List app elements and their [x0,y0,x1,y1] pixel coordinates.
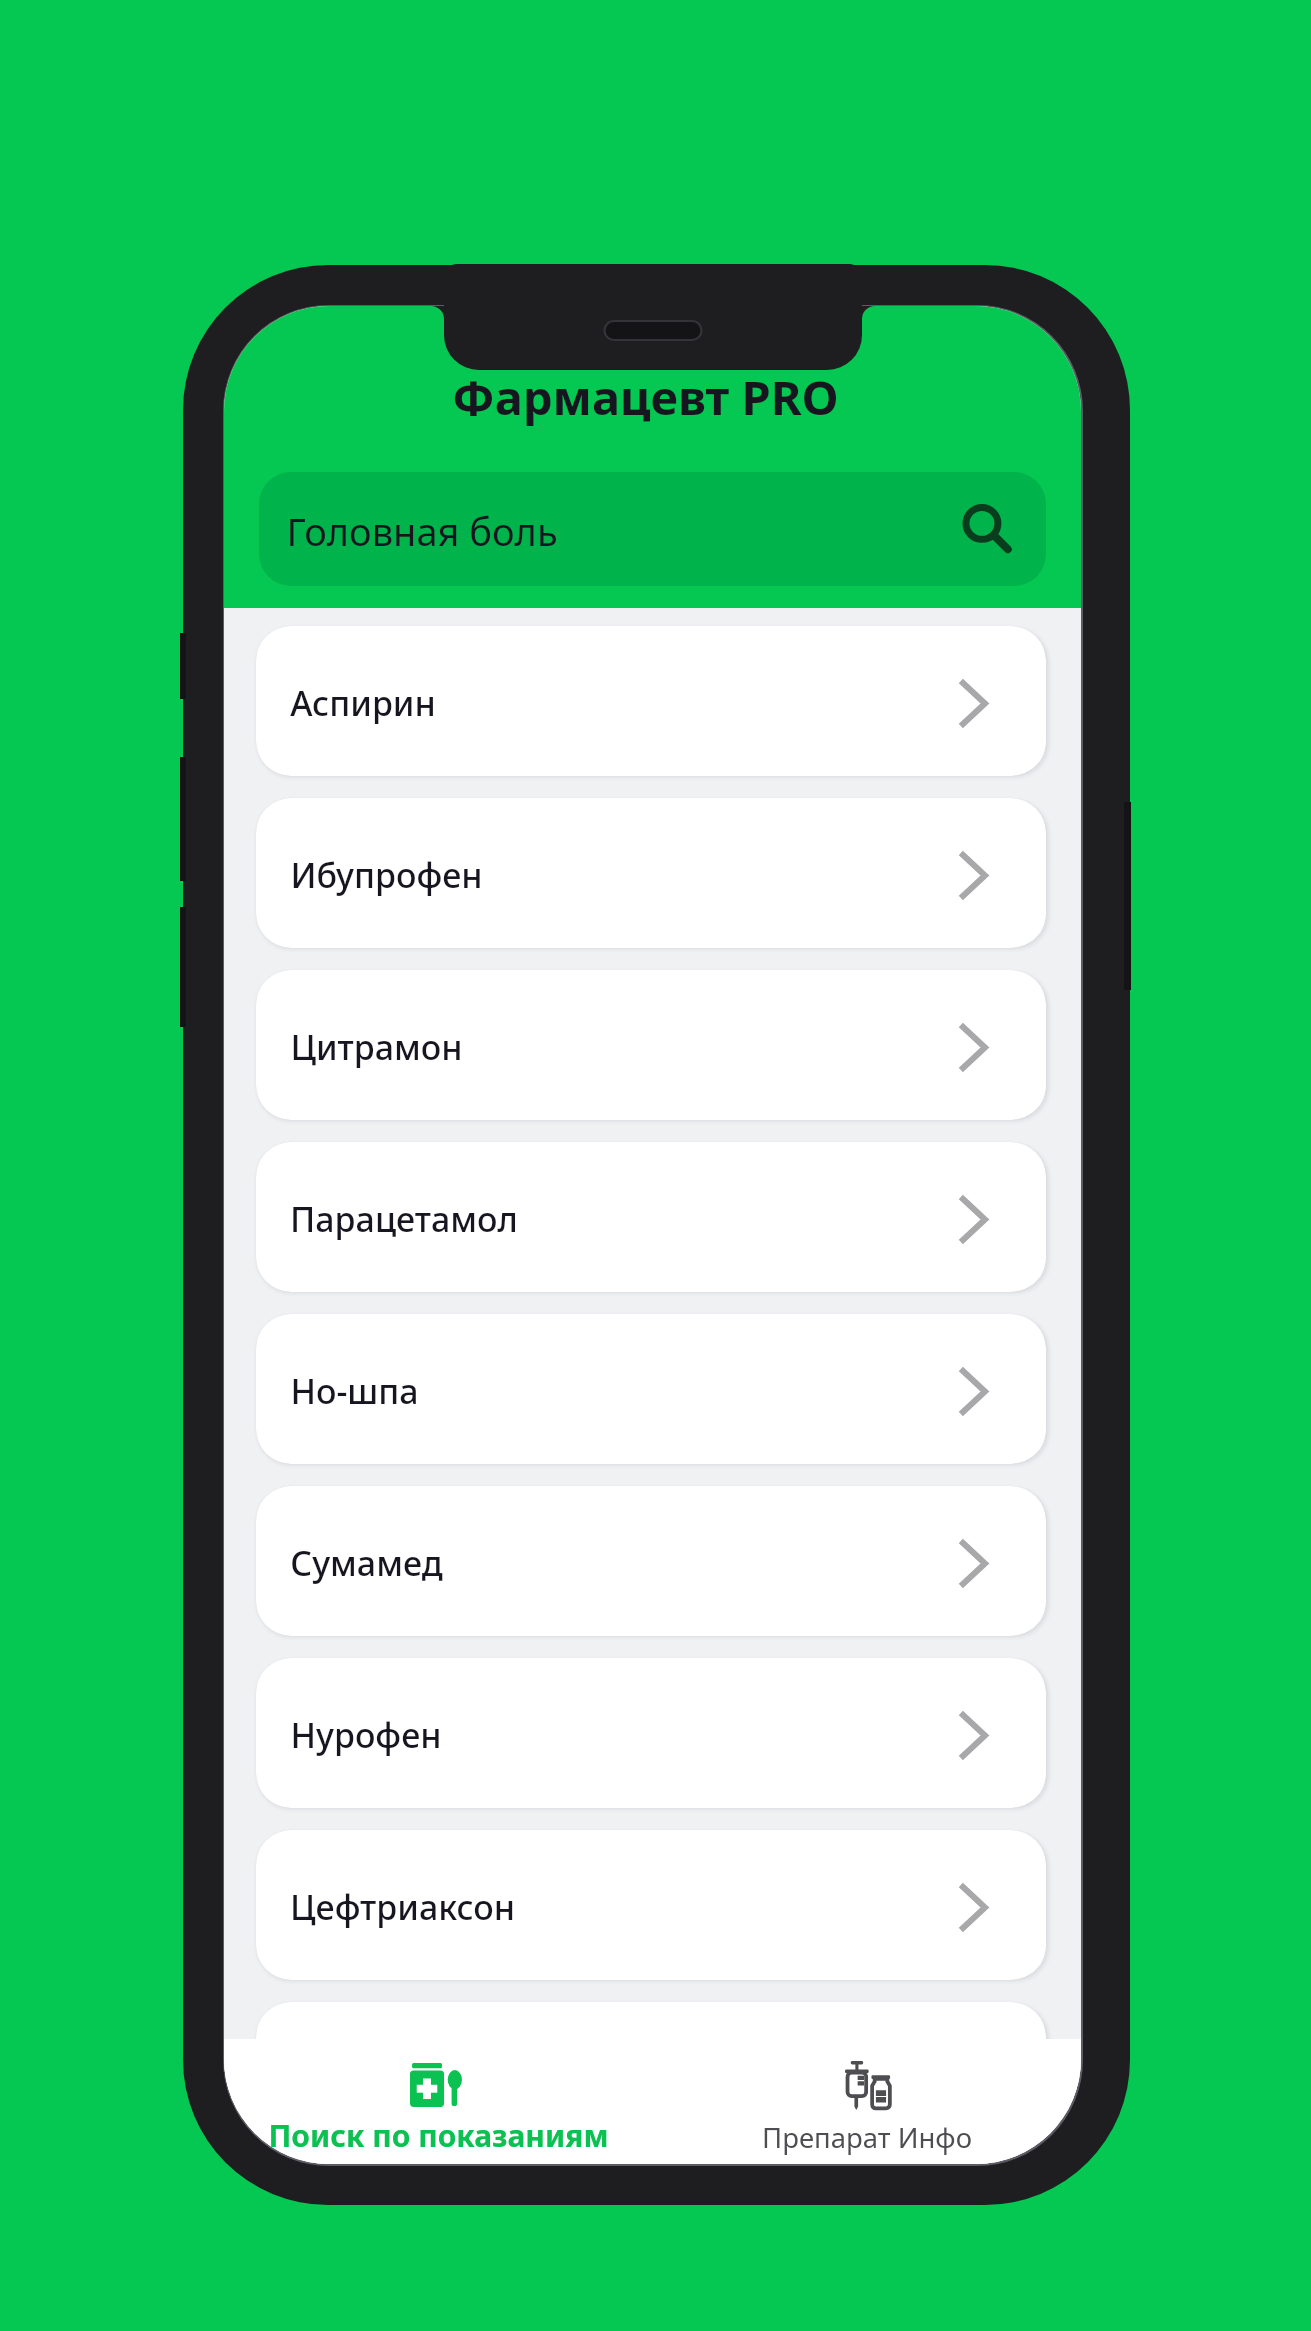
staticText: Сумамед [290,1540,443,1586]
button[interactable]: Аспирин [256,626,1046,776]
button[interactable]: Парацетамол [256,1142,1046,1292]
button[interactable]: Цефтриаксон [256,1830,1046,1980]
staticText: Но-шпа [290,1368,419,1414]
button[interactable]: Препарат Инфо [652,2039,1081,2164]
staticText: Амоксициллин [290,2056,543,2102]
staticText: Парацетамол [290,1196,518,1242]
staticText: Головная боль [286,505,558,557]
staticText: Поиск по показаниям [268,2115,609,2156]
staticText: Цефтриаксон [290,1884,515,1930]
button[interactable]: Головная боль [259,472,1046,586]
staticText: Нурофен [290,1712,442,1758]
button[interactable]: Цитрамон [256,970,1046,1120]
staticText: Аспирин [290,680,436,726]
button[interactable]: Сумамед [256,1486,1046,1636]
button[interactable]: Ибупрофен [256,798,1046,948]
staticText: Препарат Инфо [762,2119,972,2156]
staticText: Цитрамон [290,1024,463,1070]
button[interactable]: Search [951,493,1023,565]
staticText: Ибупрофен [290,852,483,898]
button[interactable]: Поиск по показаниям [224,2039,652,2164]
button[interactable]: Но-шпа [256,1314,1046,1464]
button[interactable]: Нурофен [256,1658,1046,1808]
staticText: Фармацевт PRO [452,365,839,429]
button[interactable]: Амоксициллин [256,2002,1046,2152]
